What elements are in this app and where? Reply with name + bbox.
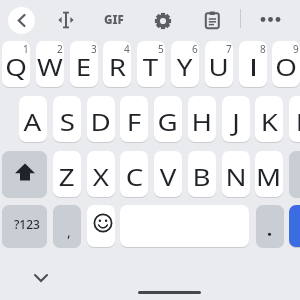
staticText: J [232, 106, 241, 138]
button[interactable]: U [205, 41, 233, 87]
button[interactable]: S [53, 96, 81, 142]
button[interactable]: A [19, 96, 47, 142]
button[interactable]: Z [53, 151, 81, 197]
button[interactable]: N [222, 151, 250, 197]
button[interactable]: T [137, 41, 165, 87]
button[interactable]: O [272, 41, 300, 87]
button[interactable] [30, 268, 52, 288]
button[interactable]: GIF [100, 8, 128, 32]
button[interactable]: E [70, 41, 98, 87]
staticText: K [261, 106, 278, 138]
button[interactable]: V [154, 151, 182, 197]
staticText: X [93, 161, 109, 193]
staticText: 7 [226, 42, 232, 56]
staticText: Q [5, 51, 28, 83]
button[interactable] [87, 205, 115, 247]
staticText: 2 [57, 42, 63, 56]
button[interactable]: D [87, 96, 115, 142]
button[interactable]: 8 [239, 41, 267, 87]
staticText: 6 [192, 42, 198, 56]
button[interactable]: L [289, 96, 300, 142]
staticText: 8 [260, 42, 266, 56]
button[interactable] [2, 151, 47, 197]
button[interactable] [289, 205, 300, 247]
button[interactable]: ?123 [2, 205, 47, 247]
button[interactable]: W [36, 41, 64, 87]
button[interactable] [204, 10, 222, 31]
button[interactable]: H [188, 96, 216, 142]
staticText: A [24, 106, 42, 138]
staticText: U [208, 51, 230, 83]
button[interactable] [56, 10, 76, 30]
staticText: L [296, 106, 300, 138]
button[interactable]: X [87, 151, 115, 197]
staticText: D [90, 106, 112, 138]
staticText: , [67, 222, 71, 241]
staticText: B [193, 161, 211, 193]
staticText: V [160, 161, 177, 193]
staticText: R [109, 51, 126, 83]
staticText: F [127, 106, 142, 138]
staticText: T [143, 51, 159, 83]
staticText: GIF [104, 12, 124, 28]
staticText: 3 [91, 42, 97, 56]
staticText: N [225, 161, 247, 193]
button[interactable]: J [222, 96, 250, 142]
button[interactable]: Q [2, 41, 30, 87]
button[interactable] [8, 7, 35, 34]
staticText: S [60, 106, 75, 138]
staticText: M [256, 161, 282, 193]
staticText: 5 [158, 42, 164, 56]
button[interactable] [289, 151, 300, 197]
staticText: Y [177, 51, 193, 83]
staticText: C [126, 161, 143, 193]
staticText: H [191, 106, 213, 138]
button[interactable]: M [255, 151, 283, 197]
staticText: 4 [124, 42, 130, 56]
button[interactable]: B [188, 151, 216, 197]
button[interactable]: R [103, 41, 131, 87]
button[interactable]: C [120, 151, 148, 197]
button[interactable] [153, 11, 173, 31]
button[interactable]: Y [171, 41, 199, 87]
button[interactable]: G [154, 96, 182, 142]
button[interactable]: , [53, 205, 81, 247]
staticText: ?123 [14, 216, 40, 232]
staticText: O [275, 51, 298, 83]
button[interactable] [256, 205, 284, 247]
button[interactable]: F [120, 96, 148, 142]
staticText: W [37, 51, 63, 83]
staticText: 1 [23, 42, 29, 56]
staticText: G [157, 106, 179, 138]
staticText: Z [59, 161, 75, 193]
button[interactable]: K [255, 96, 283, 142]
button[interactable] [258, 10, 283, 30]
staticText: 9 [293, 42, 299, 56]
staticText: E [76, 51, 92, 83]
